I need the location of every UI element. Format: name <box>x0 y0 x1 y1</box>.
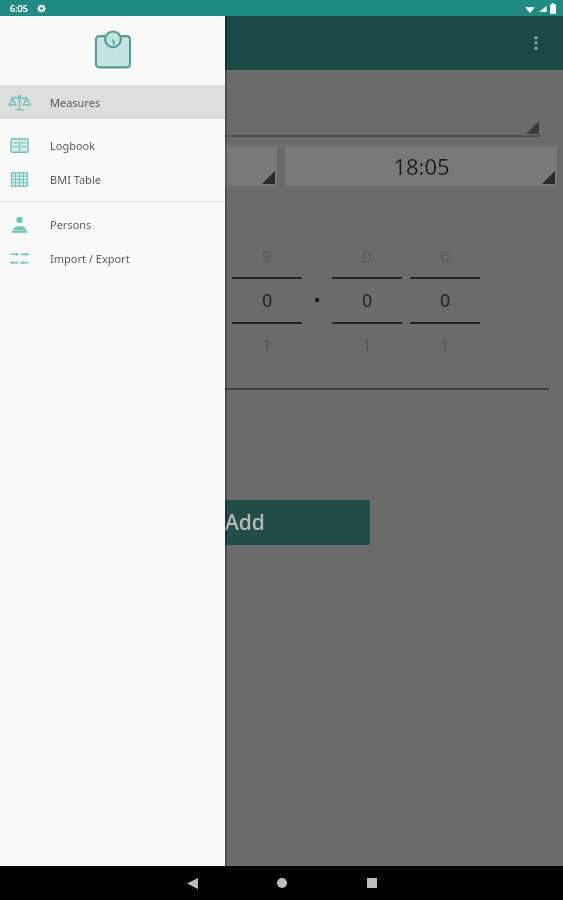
staticText: 6:05 <box>10 2 28 14</box>
staticText: Logbook <box>50 138 96 153</box>
staticText: 18:05 <box>393 151 450 181</box>
staticText: Measures <box>50 95 101 110</box>
staticText: Persons <box>50 217 92 232</box>
staticText: 1 <box>262 333 272 356</box>
button[interactable]: Recent apps <box>355 866 389 900</box>
button[interactable]: 09.10.2020 <box>6 146 277 186</box>
button[interactable]: Import / Export <box>0 241 225 275</box>
staticText: 1 <box>362 333 372 356</box>
button[interactable]: BMI Table <box>0 162 225 196</box>
staticText: Add <box>225 508 265 537</box>
button[interactable]: Logbook <box>0 128 225 162</box>
staticText: Import / Export <box>50 251 130 266</box>
button[interactable]: Measures <box>0 85 225 119</box>
staticText: BMI Table <box>50 172 101 187</box>
button[interactable] <box>22 94 541 136</box>
button[interactable]: 18:05 <box>285 146 557 186</box>
button[interactable]: Home <box>265 866 299 900</box>
staticText: 09.10.2020 <box>85 151 198 181</box>
staticText: 0 <box>262 288 273 313</box>
staticText: 0 <box>440 245 450 268</box>
staticText: 0 <box>362 288 373 313</box>
button[interactable]: Add <box>120 500 370 545</box>
staticText: 0 <box>362 245 372 268</box>
staticText: 9 <box>262 245 272 268</box>
button[interactable]: Back <box>175 866 209 900</box>
button[interactable]: More options <box>519 26 553 60</box>
staticText: 1 <box>440 333 450 356</box>
staticText: 0 <box>440 288 451 313</box>
button[interactable]: Persons <box>0 207 225 241</box>
